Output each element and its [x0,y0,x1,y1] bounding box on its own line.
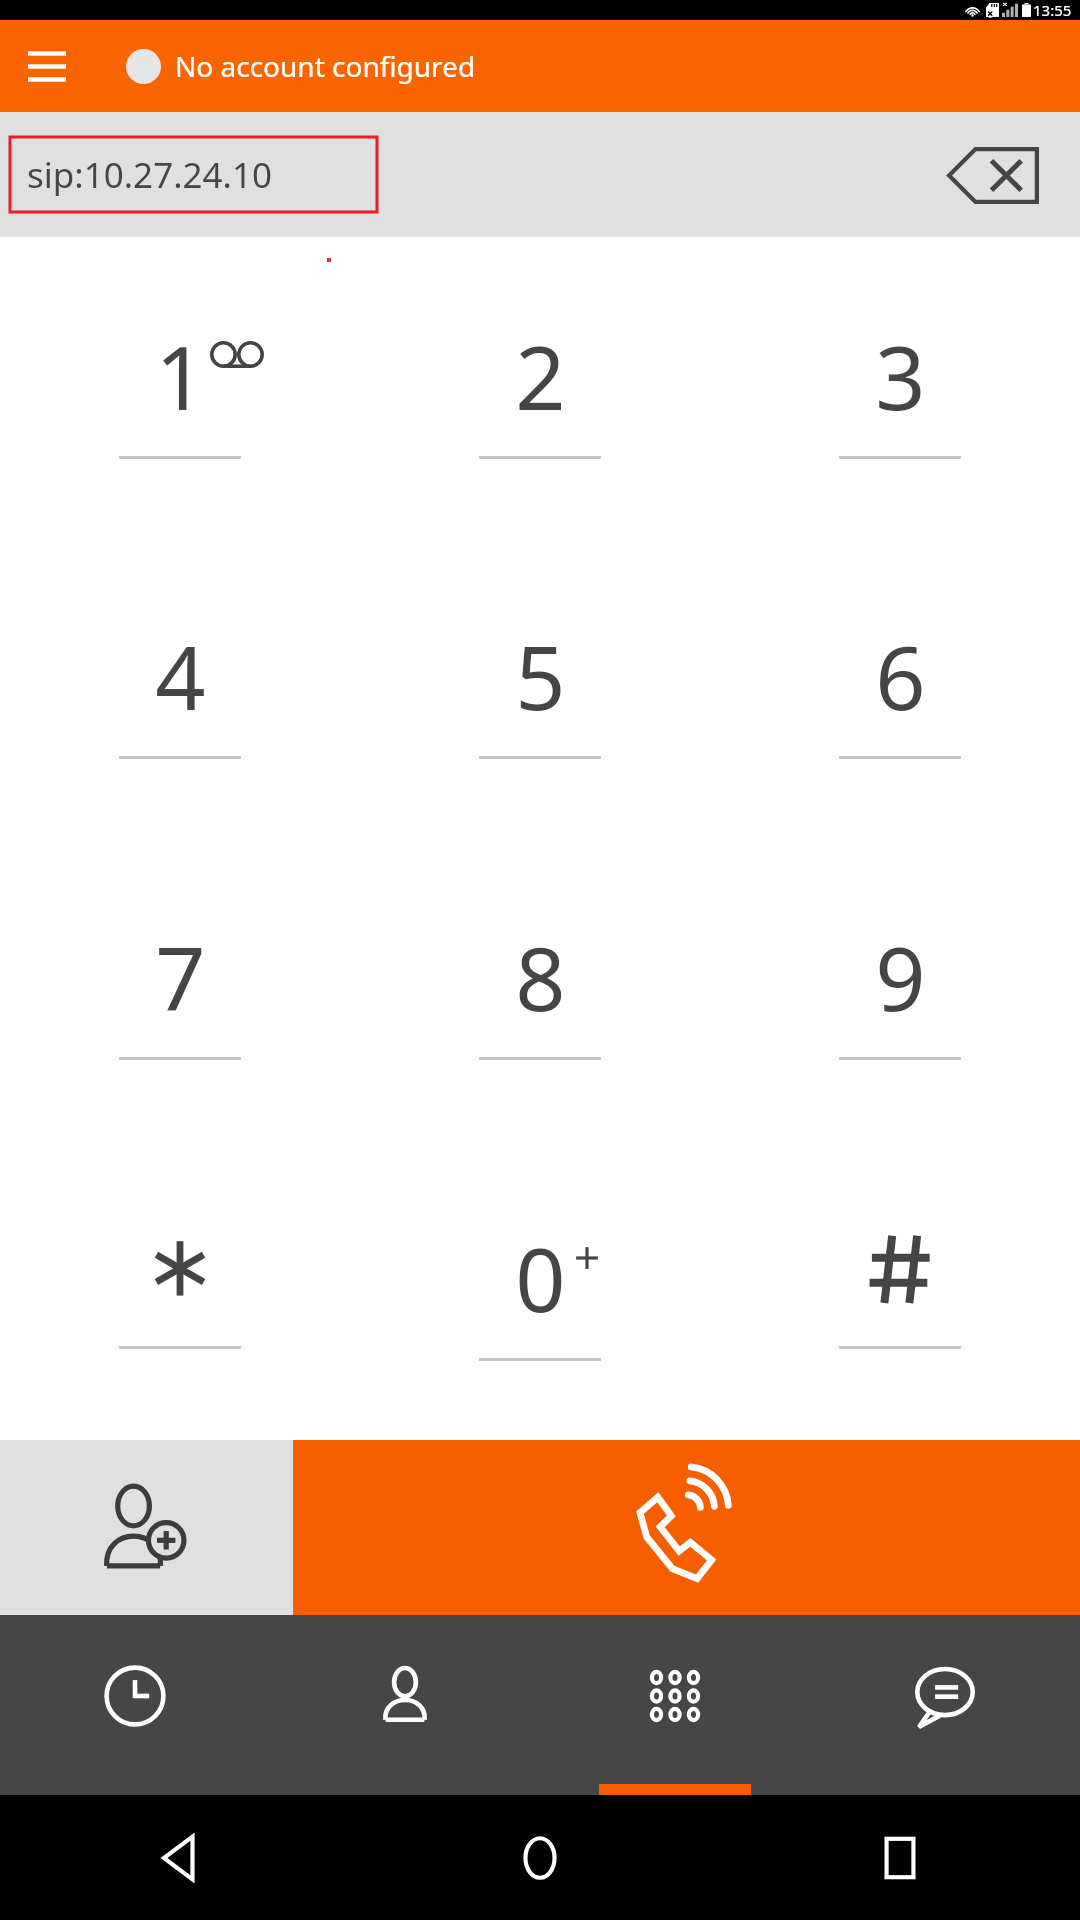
button[interactable]: Dialpad [540,1615,810,1795]
button[interactable]: 8 [360,838,720,1139]
button[interactable]: 6 [720,537,1080,838]
button[interactable]: Backspace [926,129,1060,221]
button[interactable] [0,1139,360,1440]
staticText: 3 [875,316,926,436]
button[interactable]: Add contact [0,1440,293,1615]
button[interactable]: sip:10.27.24.10 [10,137,377,212]
button[interactable]: Recent calls [0,1615,270,1795]
staticText: sip:10.27.24.10 [27,151,273,199]
staticText: 2 [515,316,566,436]
button[interactable]: Back [0,1795,360,1920]
button[interactable]: Recent apps [720,1795,1080,1920]
staticText: 6 [875,616,926,736]
button[interactable]: 4 [0,537,360,838]
button[interactable]: 9 [720,838,1080,1139]
staticText: 0 [515,1218,566,1338]
button[interactable]: 1 [0,237,360,537]
button[interactable]: 3 [720,237,1080,537]
button[interactable]: 5 [360,537,720,838]
button[interactable]: Call [293,1440,1080,1615]
staticText: 1 [155,316,206,436]
button[interactable]: Open navigation menu [14,33,80,99]
button[interactable]: Messages [810,1615,1080,1795]
staticText: 4 [155,616,206,736]
button[interactable]: Home [360,1795,720,1920]
button[interactable]: Contacts [270,1615,540,1795]
staticText: 9 [875,917,926,1037]
staticText: 5 [515,616,566,736]
button[interactable]: 2 [360,237,720,537]
button[interactable]: 0 [360,1139,720,1440]
button[interactable]: 7 [0,838,360,1139]
staticText: 7 [155,917,206,1037]
staticText: No account configured [175,47,476,85]
staticText: 13:55 [1033,0,1072,20]
button[interactable] [720,1139,1080,1440]
staticText: 8 [515,917,566,1037]
